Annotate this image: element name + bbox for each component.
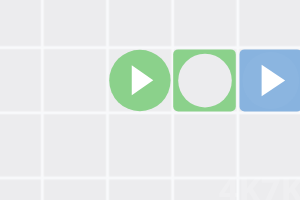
button[interactable]: Empty circle tile: [173, 49, 236, 112]
button[interactable]: Play green token: [109, 50, 171, 112]
button[interactable]: Play blue tile: [239, 49, 300, 112]
staticText: 4K7K: [219, 166, 300, 200]
